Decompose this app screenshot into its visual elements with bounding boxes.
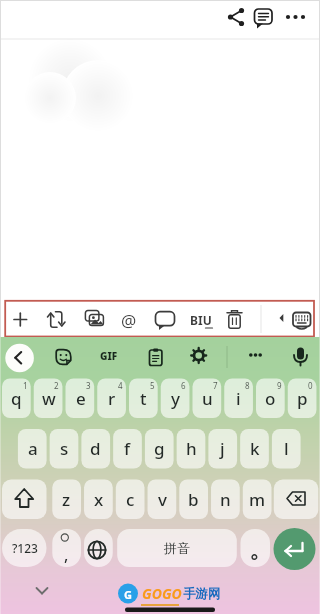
staticText: e — [76, 387, 86, 410]
staticText: y — [171, 387, 180, 410]
staticText: 5 — [150, 380, 155, 390]
staticText: 3 — [86, 380, 91, 390]
staticText: @ — [121, 309, 137, 331]
staticText: g — [154, 437, 165, 460]
staticText: f — [124, 437, 131, 460]
staticText: p — [297, 387, 308, 410]
staticText: GOGO — [142, 584, 182, 603]
staticText: z — [62, 488, 71, 511]
staticText: j — [220, 437, 225, 460]
staticText: 1 — [23, 380, 28, 390]
staticText: BIU — [190, 312, 212, 328]
staticText: l — [284, 437, 289, 460]
staticText: h — [186, 437, 197, 460]
staticText: GIF — [100, 349, 118, 363]
staticText: 9 — [277, 380, 282, 390]
staticText: w — [42, 387, 56, 410]
staticText: o — [265, 387, 276, 410]
staticText: v — [158, 488, 167, 511]
staticText: 拼音 — [164, 540, 190, 556]
staticText: 0 — [308, 380, 313, 390]
staticText: 8 — [245, 380, 250, 390]
staticText: u — [202, 387, 213, 410]
staticText: , — [64, 544, 69, 566]
staticText: c — [126, 488, 135, 511]
staticText: x — [94, 488, 104, 511]
staticText: G — [124, 587, 132, 600]
staticText: m — [249, 488, 266, 511]
staticText: q — [11, 387, 22, 410]
staticText: k — [250, 437, 260, 460]
staticText: s — [60, 437, 69, 460]
staticText: d — [90, 437, 101, 460]
staticText: 7 — [213, 380, 218, 390]
staticText: 手游网 — [183, 586, 220, 602]
staticText: b — [188, 488, 199, 511]
staticText: t — [140, 387, 147, 410]
staticText: 4 — [118, 380, 123, 390]
staticText: n — [220, 488, 231, 511]
staticText: 2 — [54, 380, 59, 390]
staticText: a — [28, 437, 38, 460]
staticText: ?123 — [12, 540, 38, 556]
staticText: 6 — [181, 380, 186, 390]
staticText: r — [108, 387, 116, 410]
staticText: i — [236, 387, 241, 410]
